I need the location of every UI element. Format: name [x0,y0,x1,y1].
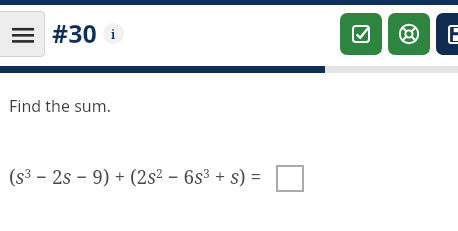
button[interactable]: Answer input [276,165,304,192]
staticText: (s3 − 2s − 9) + (2s2 − 6s3 + s) = [9,164,262,190]
staticText: #30 [52,16,97,50]
button[interactable]: Information [103,23,124,44]
button[interactable]: Menu [0,11,45,57]
button[interactable]: Check answer [340,13,382,55]
button[interactable]: Save [436,13,458,55]
button[interactable]: Help [388,13,430,55]
staticText: i [111,26,116,42]
staticText: Find the sum. [9,95,111,117]
